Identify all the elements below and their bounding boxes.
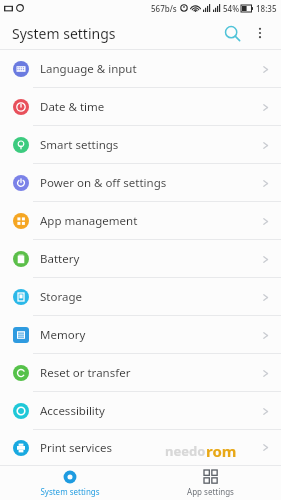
button[interactable]: Storage: [0, 278, 281, 316]
staticText: Accessibility: [40, 403, 105, 419]
staticText: App management: [40, 213, 138, 229]
button[interactable]: Power on & off settings: [0, 164, 281, 202]
staticText: 18:35: [256, 3, 277, 14]
staticText: Smart settings: [40, 137, 119, 153]
staticText: Battery: [40, 251, 80, 267]
staticText: rom: [206, 441, 237, 461]
staticText: 567b/s: [151, 3, 177, 14]
staticText: Language & input: [40, 61, 137, 77]
button[interactable]: More options: [247, 20, 273, 46]
staticText: System settings: [12, 24, 116, 43]
button[interactable]: Battery: [0, 240, 281, 278]
button[interactable]: Date & time: [0, 88, 281, 126]
button[interactable]: Memory: [0, 316, 281, 354]
staticText: Power on & off settings: [40, 175, 167, 191]
staticText: System settings: [40, 486, 100, 497]
button[interactable]: App settings: [140, 466, 281, 500]
staticText: Memory: [40, 327, 86, 343]
staticText: Print services: [40, 440, 112, 456]
button[interactable]: Language & input: [0, 50, 281, 88]
staticText: App settings: [187, 486, 234, 497]
button[interactable]: Search: [217, 18, 247, 48]
button[interactable]: System settings: [0, 466, 140, 500]
staticText: needo: [165, 442, 206, 460]
button[interactable]: Smart settings: [0, 126, 281, 164]
button[interactable]: Print services: [0, 430, 281, 465]
button[interactable]: App management: [0, 202, 281, 240]
staticText: Reset or transfer: [40, 365, 131, 381]
staticText: Date & time: [40, 99, 105, 115]
button[interactable]: Accessibility: [0, 392, 281, 430]
staticText: 54%: [223, 3, 239, 14]
button[interactable]: Reset or transfer: [0, 354, 281, 392]
staticText: Storage: [40, 289, 82, 305]
